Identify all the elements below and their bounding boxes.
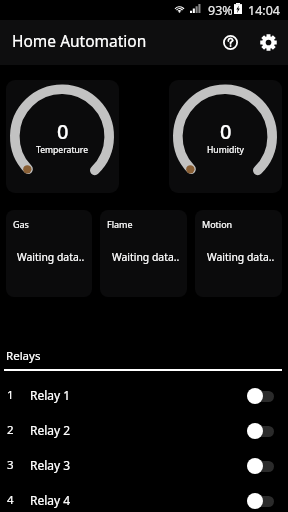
staticText: Gas [13, 218, 29, 230]
staticText: Relay 2 [30, 422, 71, 438]
button[interactable]: Settings [250, 24, 286, 60]
staticText: Home Automation [12, 30, 147, 51]
button[interactable]: Flame [100, 210, 187, 297]
staticText: Temperature [36, 144, 89, 156]
button[interactable]: Motion [195, 210, 282, 297]
staticText: Motion [202, 218, 233, 230]
staticText: 14:04 [248, 2, 280, 19]
staticText: 3 [7, 457, 14, 473]
staticText: Waiting data.. [207, 250, 275, 264]
staticText: Relay 3 [30, 457, 71, 473]
staticText: Relays [6, 348, 41, 364]
staticText: 4 [7, 492, 14, 508]
button[interactable]: Gas [6, 210, 92, 297]
button[interactable]: 2 [0, 412, 288, 447]
staticText: 1 [7, 387, 14, 403]
staticText: Waiting data.. [17, 250, 85, 264]
staticText: Humidity [207, 144, 244, 156]
staticText: 93% [208, 2, 233, 19]
button[interactable]: 0 [6, 80, 119, 193]
staticText: Flame [107, 218, 133, 230]
staticText: Relay 1 [30, 387, 71, 403]
staticText: Relay 4 [30, 492, 71, 508]
button[interactable]: 3 [0, 447, 288, 482]
staticText: 2 [7, 422, 14, 438]
staticText: Waiting data.. [112, 250, 180, 264]
staticText: 0 [220, 118, 232, 145]
button[interactable]: Help [212, 24, 248, 60]
button[interactable]: 1 [0, 377, 288, 412]
staticText: 0 [57, 118, 69, 145]
button[interactable]: 0 [169, 80, 282, 193]
button[interactable]: 4 [0, 482, 288, 512]
